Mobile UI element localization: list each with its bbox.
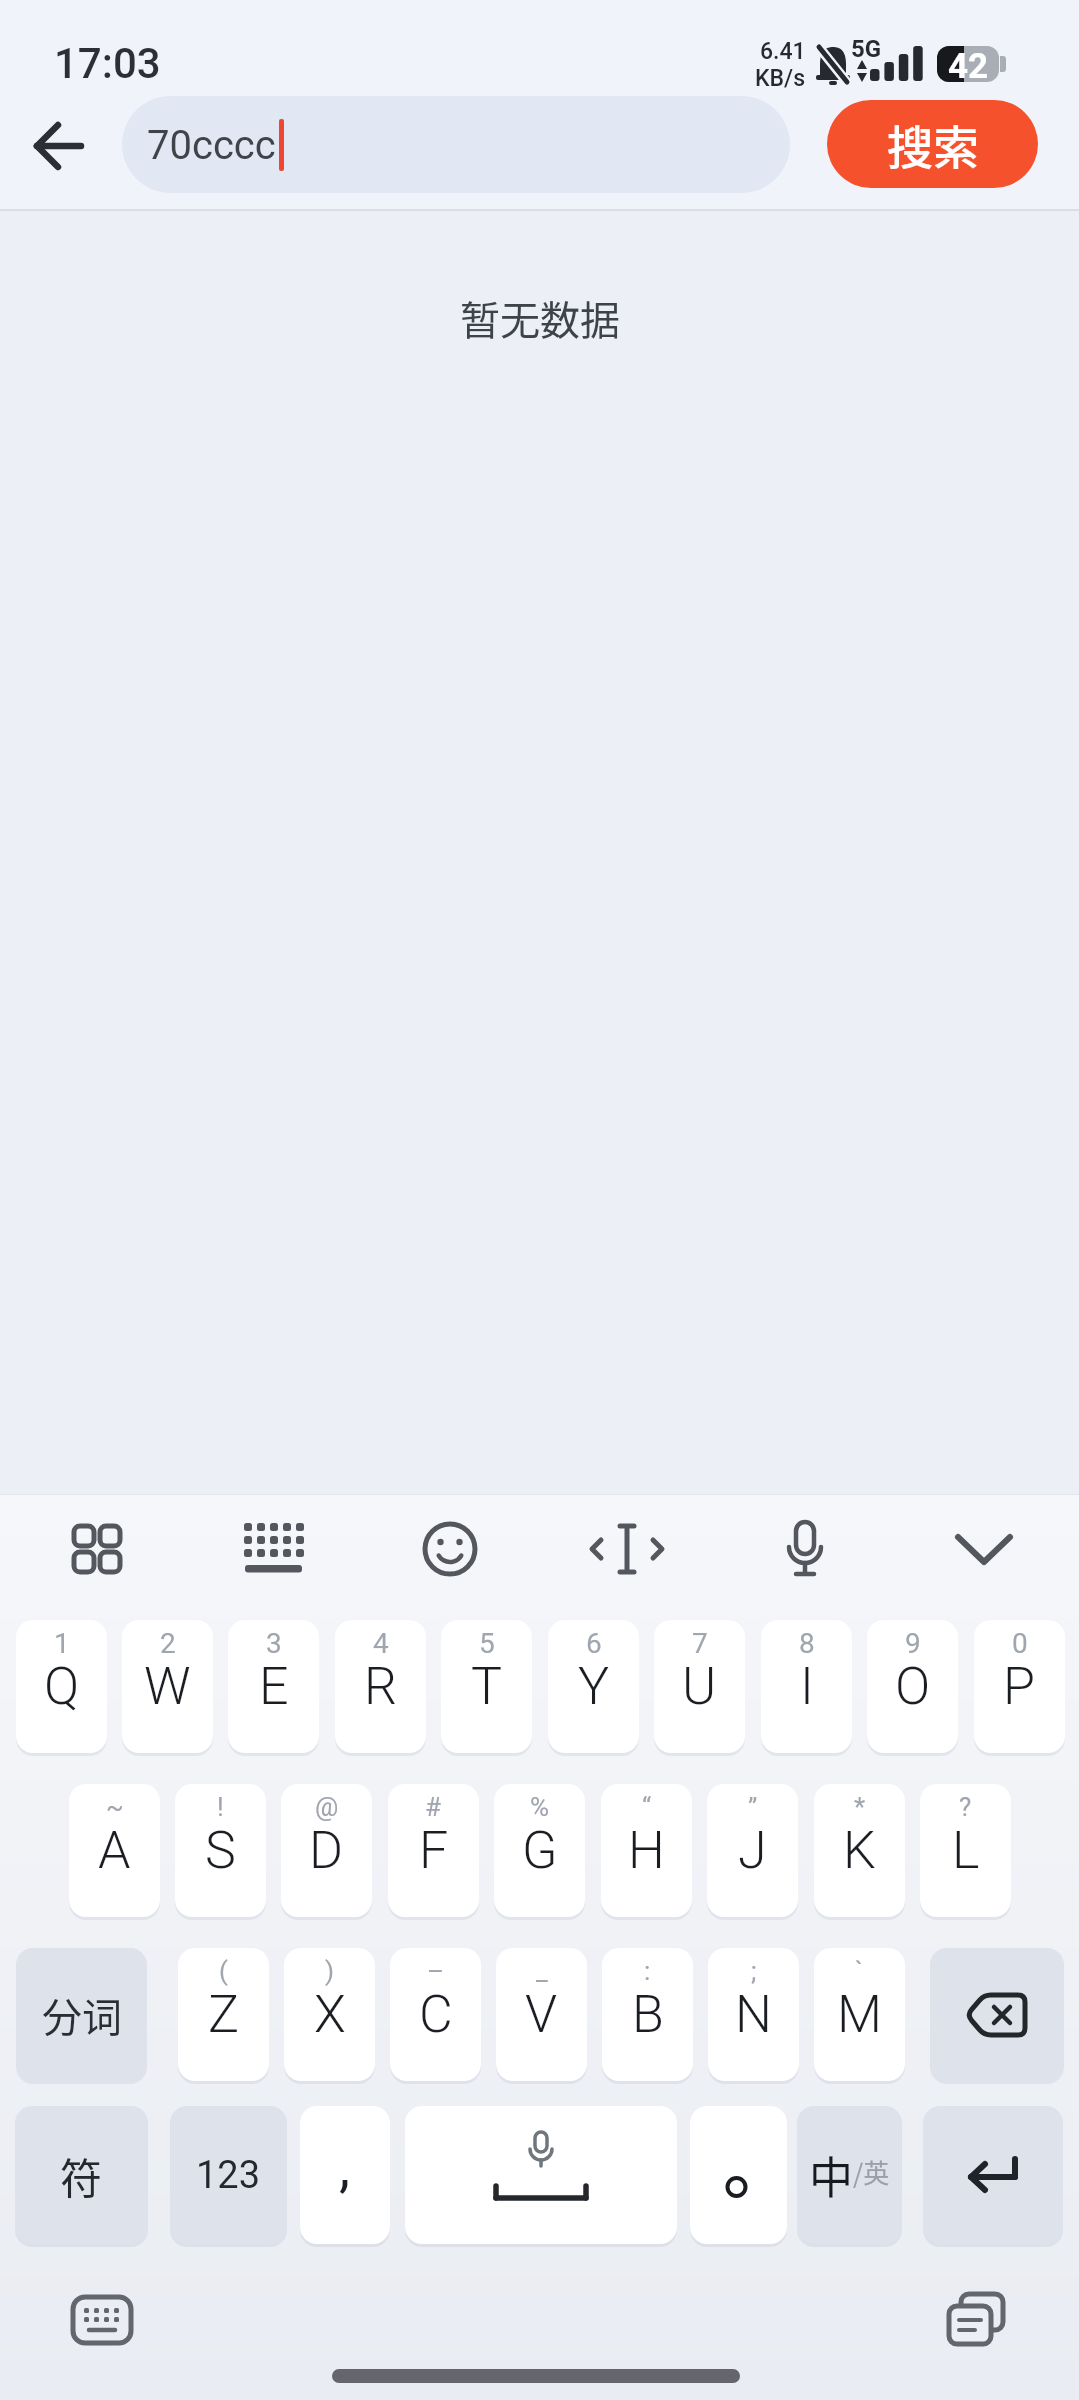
staticText: 6.41	[760, 38, 806, 65]
staticText: @	[315, 1792, 339, 1822]
staticText: P	[1003, 1656, 1036, 1717]
staticText: !	[217, 1792, 224, 1822]
staticText: ”	[748, 1792, 758, 1822]
staticText: W	[144, 1656, 191, 1717]
staticText: KB/s	[755, 65, 806, 92]
button[interactable]: ;	[708, 1948, 799, 2081]
staticText: 符	[60, 2145, 103, 2206]
staticText: 5G	[851, 35, 882, 63]
button[interactable]: _	[496, 1948, 587, 2081]
staticText: #	[425, 1792, 442, 1822]
button[interactable]: `	[814, 1948, 905, 2081]
button[interactable]: 4	[335, 1620, 426, 1753]
button[interactable]: 0	[974, 1620, 1065, 1753]
button[interactable]: 搜索	[827, 100, 1038, 188]
staticText: R	[364, 1656, 398, 1717]
staticText: Z	[208, 1984, 240, 2045]
staticText: 9	[905, 1627, 921, 1660]
button[interactable]: ~	[69, 1784, 160, 1917]
button[interactable]: 5	[441, 1620, 532, 1753]
button[interactable]	[73, 2294, 133, 2346]
staticText: (	[219, 1956, 228, 1986]
button[interactable]: 符	[15, 2106, 148, 2244]
staticText: 3	[266, 1627, 282, 1660]
button[interactable]: #	[388, 1784, 479, 1917]
button[interactable]: “	[601, 1784, 692, 1917]
staticText: H	[628, 1820, 665, 1881]
staticText: E	[259, 1656, 289, 1717]
button[interactable]	[47, 1500, 147, 1600]
button[interactable]: 3	[228, 1620, 319, 1753]
staticText: I	[800, 1656, 814, 1717]
button[interactable]: 9	[867, 1620, 958, 1753]
staticText: ;	[751, 1956, 757, 1986]
button[interactable]: ,	[300, 2106, 390, 2244]
button[interactable]	[945, 2292, 1009, 2348]
button[interactable]: 中	[797, 2106, 902, 2244]
button[interactable]: –	[390, 1948, 481, 2081]
button[interactable]: 8	[761, 1620, 852, 1753]
staticText: A	[98, 1820, 131, 1881]
staticText: F	[419, 1820, 449, 1881]
button[interactable]: ?	[920, 1784, 1011, 1917]
staticText: 8	[799, 1627, 815, 1660]
button[interactable]	[577, 1500, 677, 1600]
staticText: 2	[160, 1627, 176, 1660]
staticText: 4	[373, 1627, 389, 1660]
staticText: 7	[692, 1627, 708, 1660]
staticText: O	[895, 1656, 931, 1717]
staticText: V	[525, 1984, 558, 2045]
button[interactable]: 分词	[16, 1948, 147, 2081]
staticText: J	[738, 1820, 767, 1881]
button[interactable]	[690, 2106, 787, 2244]
staticText: 5	[479, 1627, 495, 1660]
staticText: `	[855, 1956, 864, 1986]
button[interactable]: *	[814, 1784, 905, 1917]
staticText: K	[843, 1820, 876, 1881]
staticText: 42	[948, 46, 989, 82]
button[interactable]	[32, 120, 84, 172]
button[interactable]: !	[175, 1784, 266, 1917]
staticText: Y	[578, 1656, 610, 1717]
staticText: ,	[339, 2134, 351, 2200]
button[interactable]: 2	[122, 1620, 213, 1753]
button[interactable]	[755, 1500, 855, 1600]
button[interactable]: (	[178, 1948, 269, 2081]
staticText: 17:03	[54, 39, 161, 88]
staticText: 中	[809, 2143, 853, 2207]
button[interactable]: 70cccc	[122, 96, 790, 193]
button[interactable]: 6	[548, 1620, 639, 1753]
staticText: T	[471, 1656, 503, 1717]
staticText: 分词	[42, 1986, 122, 2044]
button[interactable]	[405, 2106, 677, 2244]
staticText: _	[536, 1956, 548, 1986]
button[interactable]: ”	[707, 1784, 798, 1917]
staticText: S	[205, 1820, 236, 1881]
button[interactable]: @	[281, 1784, 372, 1917]
button[interactable]: 1	[16, 1620, 107, 1753]
button[interactable]	[934, 1500, 1034, 1600]
button[interactable]: 123	[170, 2106, 287, 2244]
button[interactable]: :	[602, 1948, 693, 2081]
staticText: 1	[54, 1627, 70, 1660]
button[interactable]: )	[284, 1948, 375, 2081]
button[interactable]	[923, 2106, 1063, 2244]
button[interactable]	[930, 1948, 1064, 2081]
staticText: 6	[586, 1627, 602, 1660]
button[interactable]: 7	[654, 1620, 745, 1753]
staticText: B	[632, 1984, 664, 2045]
staticText: Q	[44, 1656, 80, 1717]
staticText: ?	[959, 1792, 972, 1822]
staticText: C	[419, 1984, 453, 2045]
button[interactable]: %	[494, 1784, 585, 1917]
staticText: 0	[1012, 1627, 1028, 1660]
button[interactable]	[223, 1500, 323, 1600]
staticText: M	[837, 1984, 882, 2045]
button[interactable]	[400, 1500, 500, 1600]
staticText: 搜索	[887, 111, 979, 178]
staticText: :	[644, 1956, 651, 1986]
staticText: )	[325, 1956, 335, 1986]
staticText: L	[952, 1820, 980, 1881]
staticText: –	[427, 1956, 445, 1986]
staticText: *	[854, 1792, 866, 1822]
